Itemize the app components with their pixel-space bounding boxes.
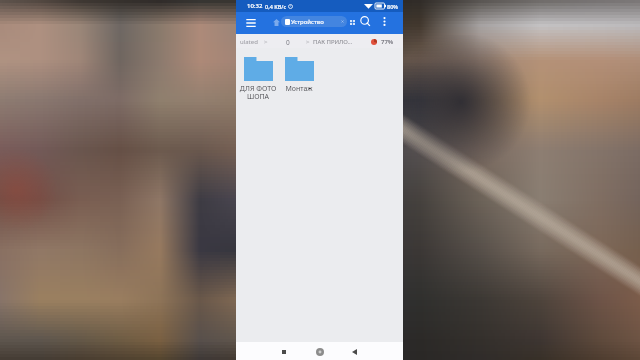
staticText: 0 <box>286 38 290 47</box>
button[interactable]: ДЛЯ ФОТО ШОПА <box>237 57 279 101</box>
staticText: Устройство <box>291 18 324 26</box>
staticText: ДЛЯ ФОТО ШОПА <box>237 84 279 101</box>
staticText: 77% <box>381 38 394 46</box>
staticText: > <box>306 38 310 46</box>
button[interactable]: Home <box>312 344 328 360</box>
button[interactable]: Устройство <box>281 16 347 27</box>
staticText: 80% <box>387 3 398 10</box>
staticText: Монтаж <box>285 84 313 94</box>
button[interactable]: More options <box>377 14 392 29</box>
button[interactable]: View mode <box>346 16 359 29</box>
button[interactable]: Home <box>270 16 282 28</box>
button[interactable]: Монтаж <box>278 57 320 94</box>
staticText: 0,4 KB/c <box>265 3 287 10</box>
button[interactable]: Search <box>357 13 373 29</box>
button[interactable]: Back <box>346 344 362 360</box>
staticText: 10:32 <box>247 2 263 10</box>
staticText: ПАК ПРИЛО… <box>313 38 353 46</box>
staticText: ulated <box>240 38 258 46</box>
button[interactable]: Recents <box>276 344 292 360</box>
button[interactable]: Menu <box>242 14 259 31</box>
staticText: > <box>264 38 268 46</box>
